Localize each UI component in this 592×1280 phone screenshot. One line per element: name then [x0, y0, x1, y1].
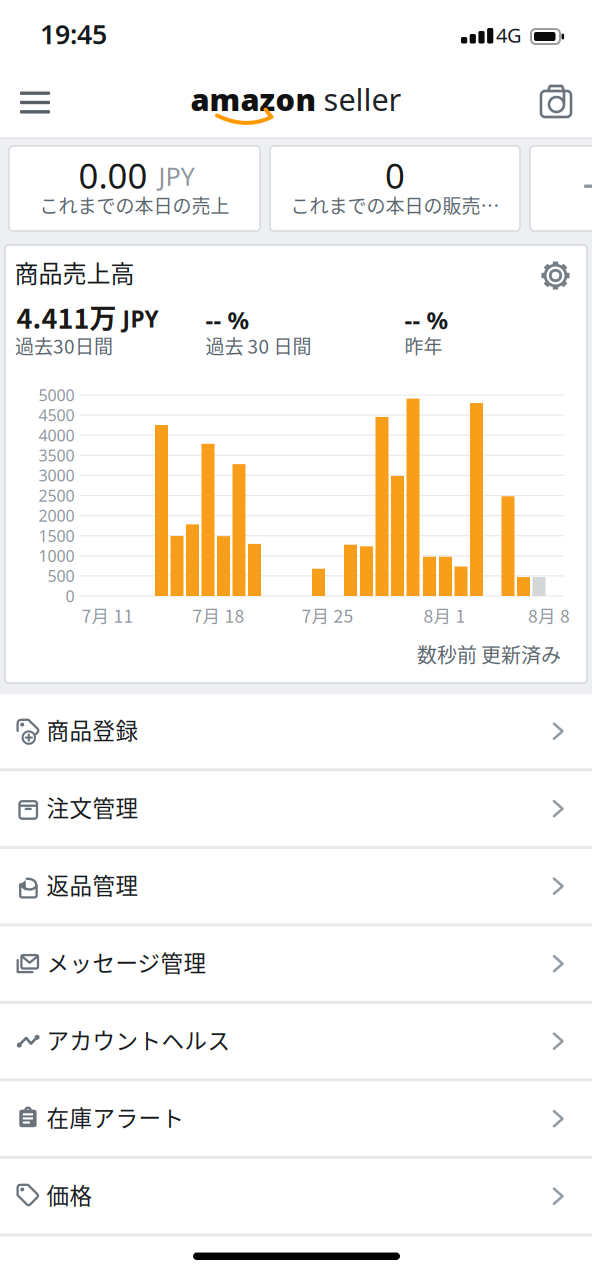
button[interactable]: Menu	[0, 62, 70, 138]
staticText: 4500	[38, 404, 74, 426]
staticText: これまでの本日の売上	[39, 191, 229, 219]
staticText: 1500	[38, 525, 74, 546]
button[interactable]: Scan	[533, 80, 579, 126]
staticText: 4.411万 JPY	[16, 298, 158, 336]
staticText: アカウントヘルス	[46, 1023, 230, 1056]
staticText: 500	[47, 565, 74, 586]
staticText: 過去 30 日間	[205, 332, 311, 359]
staticText: 在庫アラート	[46, 1101, 184, 1133]
button[interactable]: アカウントヘルス	[0, 1004, 592, 1078]
staticText: -- %	[205, 304, 249, 336]
staticText: 5000	[38, 384, 74, 406]
staticText: amazon	[190, 79, 316, 119]
staticText: 商品売上高	[14, 255, 134, 289]
staticText: 4G	[496, 22, 522, 48]
button[interactable]: Settings	[539, 259, 571, 291]
button[interactable]: 注文管理	[0, 771, 592, 846]
staticText: 2000	[38, 505, 74, 526]
staticText: 1000	[38, 545, 74, 566]
staticText: 7月 25	[301, 602, 353, 628]
staticText: -- %	[404, 304, 448, 336]
staticText: 注文管理	[46, 791, 138, 823]
staticText: 0	[65, 585, 74, 607]
staticText: 価格	[46, 1178, 92, 1211]
button[interactable]: 返品管理	[0, 849, 592, 923]
staticText: 2500	[38, 485, 74, 506]
button[interactable]: メッセージ管理	[0, 926, 592, 1001]
staticText: 3500	[38, 445, 74, 466]
staticText: これまでの本日の販売⋯	[290, 191, 499, 219]
button[interactable]: 価格	[0, 1159, 592, 1233]
button[interactable]: 0.00	[9, 146, 260, 231]
button[interactable]: 0	[270, 146, 520, 231]
staticText: 7月 18	[192, 602, 244, 628]
staticText: 昨年	[404, 332, 442, 359]
staticText: 4000	[38, 425, 74, 446]
staticText: 返品管理	[46, 868, 138, 901]
staticText: 3000	[38, 465, 74, 486]
staticText: seller	[323, 79, 401, 119]
staticText: 数秒前 更新済み	[417, 639, 561, 668]
button[interactable]: 商品登録	[0, 694, 592, 768]
staticText: メッセージ管理	[46, 946, 206, 978]
staticText: 7月 11	[81, 602, 133, 628]
button[interactable]: 本日の統計	[530, 146, 592, 231]
button[interactable]: 在庫アラート	[0, 1081, 592, 1156]
staticText: JPY	[151, 159, 194, 193]
staticText: 0	[385, 152, 405, 198]
staticText: 0.00	[78, 152, 147, 198]
staticText: 8月 8	[528, 602, 570, 628]
staticText: 商品登録	[46, 713, 138, 746]
staticText: 過去30日間	[15, 332, 113, 359]
staticText: 8月 1	[423, 602, 465, 628]
staticText: 19:45	[40, 16, 107, 52]
